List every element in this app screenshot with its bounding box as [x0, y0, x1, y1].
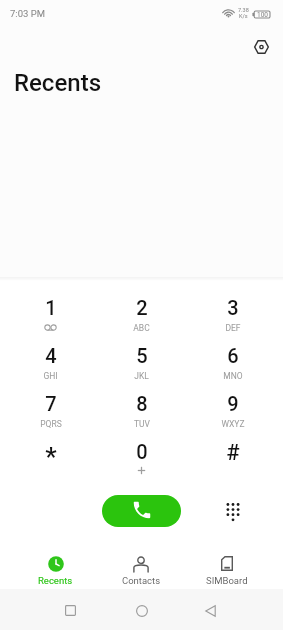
staticText: Contacts: [122, 575, 161, 586]
button[interactable]: 8: [96, 386, 187, 434]
button[interactable]: 4: [5, 338, 96, 386]
staticText: MNO: [223, 371, 243, 381]
button[interactable]: Dialpad: [216, 494, 249, 527]
staticText: 7:03 PM: [10, 8, 45, 19]
button[interactable]: SIMBoard: [184, 554, 270, 588]
staticText: 7.38: [238, 7, 249, 13]
button[interactable]: 9: [187, 386, 278, 434]
staticText: 9: [227, 392, 239, 415]
button[interactable]: Back: [192, 589, 229, 630]
staticText: Recents: [14, 69, 102, 97]
staticText: JKL: [134, 371, 149, 381]
button[interactable]: Overview: [52, 589, 89, 630]
button[interactable]: 7: [5, 386, 96, 434]
button[interactable]: *: [5, 434, 96, 482]
staticText: DEF: [225, 323, 241, 333]
staticText: 8: [136, 392, 148, 415]
button[interactable]: 0: [96, 434, 187, 482]
staticText: K/s: [239, 13, 248, 19]
button[interactable]: 5: [96, 338, 187, 386]
button[interactable]: 3: [187, 290, 278, 338]
button[interactable]: Call: [102, 495, 181, 527]
staticText: WXYZ: [221, 419, 245, 429]
staticText: #: [226, 440, 240, 466]
staticText: *: [45, 442, 57, 472]
staticText: 3: [227, 296, 239, 319]
staticText: SIMBoard: [206, 575, 248, 586]
staticText: TUV: [134, 419, 150, 429]
staticText: 1: [45, 296, 57, 319]
staticText: 7: [45, 392, 57, 415]
staticText: PQRS: [40, 419, 62, 429]
button[interactable]: Recents: [13, 554, 98, 588]
button[interactable]: 2: [96, 290, 187, 338]
button[interactable]: 1: [5, 290, 96, 338]
staticText: GHI: [43, 371, 58, 381]
staticText: 2: [136, 296, 148, 319]
button[interactable]: 6: [187, 338, 278, 386]
staticText: 5: [136, 344, 148, 367]
button[interactable]: #: [187, 434, 278, 482]
button[interactable]: Home: [123, 589, 160, 630]
button[interactable]: More options: [248, 34, 274, 60]
button[interactable]: Contacts: [98, 554, 184, 588]
staticText: 4: [45, 344, 57, 367]
staticText: Recents: [38, 575, 73, 586]
staticText: ABC: [133, 323, 150, 333]
staticText: 6: [227, 344, 239, 367]
staticText: 0: [136, 440, 148, 463]
staticText: 100: [257, 11, 268, 18]
